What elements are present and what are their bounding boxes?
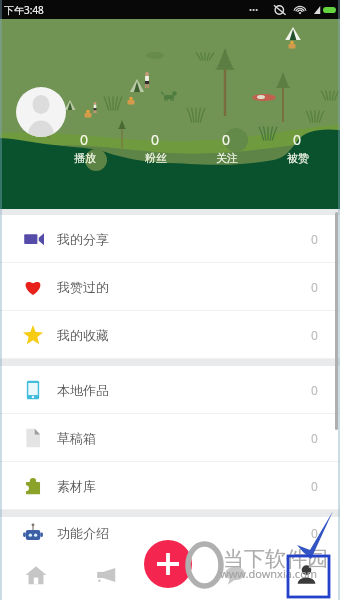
button[interactable]: 0 [49, 130, 120, 165]
button[interactable]: 本地作品 [0, 366, 340, 414]
staticText: 草稿箱 [57, 430, 96, 446]
button[interactable]: Discover [72, 549, 140, 600]
staticText: 播放 [74, 151, 96, 165]
staticText: 关注 [216, 151, 238, 165]
staticText: 0 [311, 279, 318, 295]
staticText: 0 [311, 327, 318, 343]
button[interactable]: 素材库 [0, 462, 340, 510]
staticText: 我赞过的 [57, 279, 109, 295]
staticText: www.downxia.com [220, 566, 318, 581]
button[interactable]: 我赞过的 [0, 263, 340, 311]
button[interactable]: Avatar [16, 87, 66, 137]
button[interactable]: Profile [272, 549, 340, 600]
staticText: 素材库 [57, 478, 96, 494]
button[interactable]: Messages [198, 549, 272, 600]
button[interactable]: Create [144, 540, 192, 588]
staticText: 我的分享 [57, 231, 109, 247]
staticText: 0 [311, 382, 318, 398]
staticText: 被赞 [287, 151, 309, 165]
button[interactable]: 0 [191, 130, 262, 165]
button[interactable]: 草稿箱 [0, 414, 340, 462]
button[interactable]: Home [0, 549, 72, 600]
staticText: 功能介绍 [57, 525, 109, 541]
staticText: 0 [311, 478, 318, 494]
staticText: 0 [151, 130, 160, 149]
button[interactable]: 0 [262, 130, 333, 165]
staticText: 我的收藏 [57, 327, 109, 343]
staticText: 下午3:48 [4, 3, 44, 17]
button[interactable]: 我的收藏 [0, 311, 340, 359]
staticText: 0 [222, 130, 231, 149]
button[interactable]: 功能介绍 [0, 517, 340, 549]
staticText: 0 [311, 231, 318, 247]
staticText: 0 [311, 525, 318, 541]
staticText: 0 [311, 430, 318, 446]
staticText: 0 [80, 130, 89, 149]
staticText: 粉丝 [145, 151, 167, 165]
button[interactable]: 我的分享 [0, 215, 340, 263]
staticText: 当下软件园 [223, 546, 328, 572]
staticText: 本地作品 [57, 382, 109, 398]
button[interactable]: 0 [120, 130, 191, 165]
staticText: 0 [293, 130, 302, 149]
